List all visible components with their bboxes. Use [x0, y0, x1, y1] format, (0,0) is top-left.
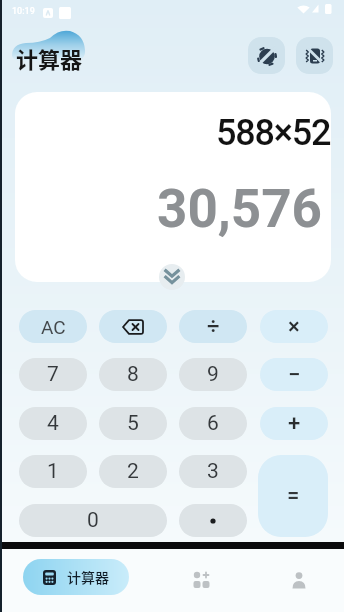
- button[interactable]: [187, 566, 215, 594]
- staticText: 0: [87, 508, 99, 533]
- staticText: 588×52: [216, 112, 331, 154]
- staticText: −: [288, 362, 301, 388]
- staticText: 10:19: [12, 6, 35, 17]
- button[interactable]: 计算器: [16, 42, 83, 74]
- staticText: 3: [207, 459, 219, 484]
- staticText: ÷: [207, 314, 220, 340]
- button[interactable]: [296, 37, 333, 74]
- button[interactable]: [285, 566, 313, 594]
- button[interactable]: ×: [260, 310, 328, 343]
- staticText: 6: [207, 411, 219, 436]
- button[interactable]: [99, 310, 167, 343]
- button[interactable]: 1: [19, 455, 87, 488]
- staticText: 5: [127, 411, 139, 436]
- button[interactable]: 7: [19, 358, 87, 391]
- staticText: 30,576: [157, 178, 323, 240]
- button[interactable]: [179, 504, 247, 537]
- button[interactable]: −: [260, 358, 328, 391]
- button[interactable]: 0: [19, 504, 167, 537]
- staticText: 8: [127, 362, 139, 387]
- button[interactable]: [159, 264, 185, 290]
- button[interactable]: [248, 37, 285, 74]
- button[interactable]: 9: [179, 358, 247, 391]
- button[interactable]: 4: [19, 407, 87, 440]
- button[interactable]: AC: [19, 310, 87, 343]
- staticText: +: [288, 411, 301, 437]
- button[interactable]: =: [258, 455, 328, 537]
- button[interactable]: 2: [99, 455, 167, 488]
- staticText: 1: [47, 459, 59, 484]
- staticText: ×: [288, 314, 300, 340]
- staticText: AC: [41, 316, 66, 338]
- staticText: =: [287, 483, 300, 509]
- staticText: 7: [47, 362, 59, 387]
- staticText: 4: [47, 411, 59, 436]
- button[interactable]: 计算器: [23, 559, 129, 595]
- staticText: 计算器: [67, 567, 109, 587]
- staticText: 2: [127, 459, 139, 484]
- staticText: 9: [207, 362, 219, 387]
- button[interactable]: 6: [179, 407, 247, 440]
- button[interactable]: 5: [99, 407, 167, 440]
- button[interactable]: 8: [99, 358, 167, 391]
- button[interactable]: +: [260, 407, 328, 440]
- button[interactable]: 3: [179, 455, 247, 488]
- button[interactable]: ÷: [179, 310, 247, 343]
